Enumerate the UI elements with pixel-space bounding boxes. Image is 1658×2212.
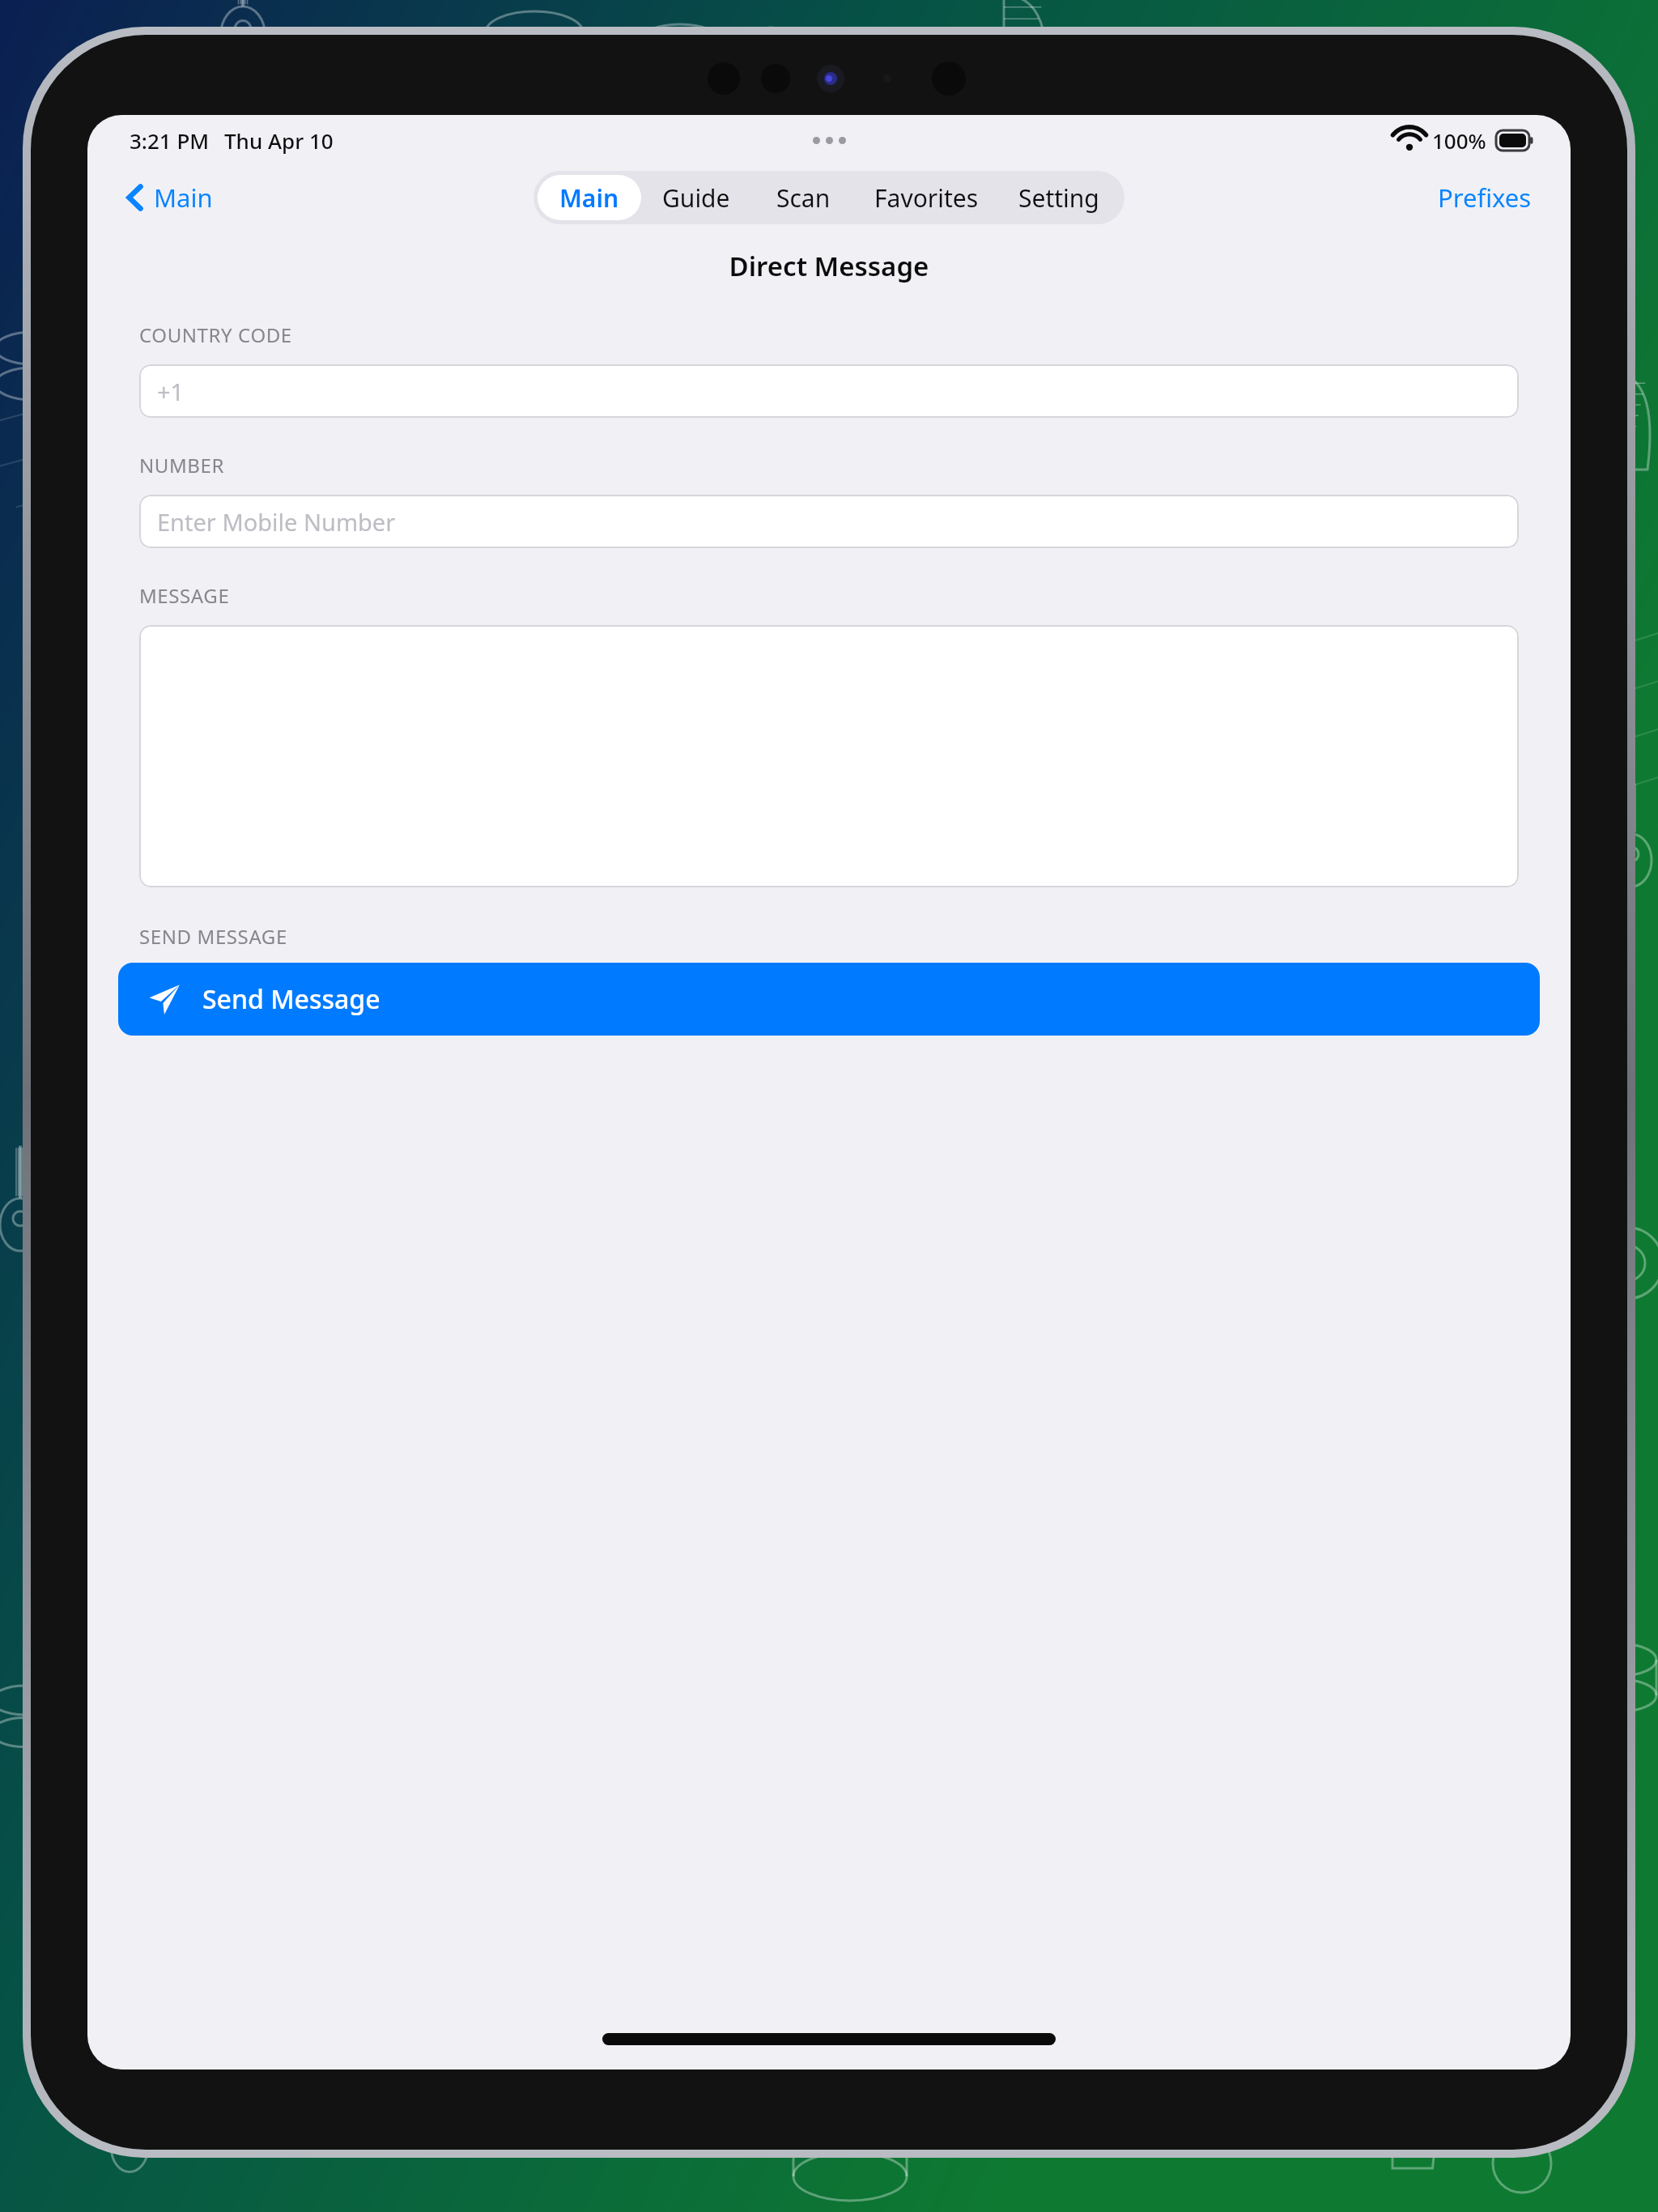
button[interactable]: Send [118,963,1540,1036]
button[interactable]: Main [538,175,641,220]
button[interactable]: Main [118,176,221,219]
button[interactable]: Scan [751,175,855,220]
button[interactable]: Guide [641,175,751,220]
staticText: Guide [662,181,730,215]
staticText: Enter Mobile Number [157,506,396,538]
button[interactable]: Prefixes [1430,176,1540,219]
staticText: Prefixes [1438,181,1532,215]
staticText: Scan [776,181,831,215]
button[interactable]: Favorites [855,175,997,220]
button[interactable]: Setting [997,175,1120,220]
staticText: +1 [157,376,185,407]
staticText: SEND MESSAGE [139,923,287,950]
other: Send [147,982,181,1016]
staticText: Favorites [874,181,979,215]
staticText: Main [559,181,619,215]
button[interactable] [139,625,1519,887]
staticText: Direct Message [87,248,1571,284]
button[interactable]: +1 [139,364,1519,418]
staticText: 3:21 PM [130,126,210,155]
staticText: 100% [1432,126,1486,155]
staticText: NUMBER [139,452,225,479]
button[interactable]: Enter Mobile Number [139,495,1519,548]
staticText: Thu Apr 10 [224,126,334,155]
staticText: MESSAGE [139,582,230,609]
staticText: Send Message [202,981,380,1017]
staticText: COUNTRY CODE [139,321,292,348]
staticText: Setting [1018,181,1099,215]
staticText: Main [154,181,213,215]
